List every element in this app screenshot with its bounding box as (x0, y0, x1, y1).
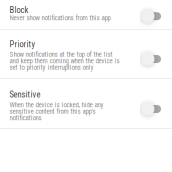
button[interactable]: Priority (0, 30, 172, 78)
button[interactable]: Block (0, 0, 172, 29)
staticText: Block (9, 5, 28, 15)
staticText: notifications (9, 114, 41, 122)
button[interactable]: Sensitive (0, 79, 172, 128)
staticText: Show notifications at the top of the lis… (9, 50, 112, 58)
staticText: When the device is locked, hide any (9, 101, 103, 109)
staticText: Never show notifications from this app (9, 14, 110, 22)
staticText: Sensitive (9, 90, 40, 100)
staticText: Priority (9, 39, 35, 49)
staticText: and keep them coming when the device is (9, 57, 119, 65)
staticText: sensitive content from this app's (9, 107, 95, 115)
staticText: set to priority interruptions only (9, 63, 93, 71)
